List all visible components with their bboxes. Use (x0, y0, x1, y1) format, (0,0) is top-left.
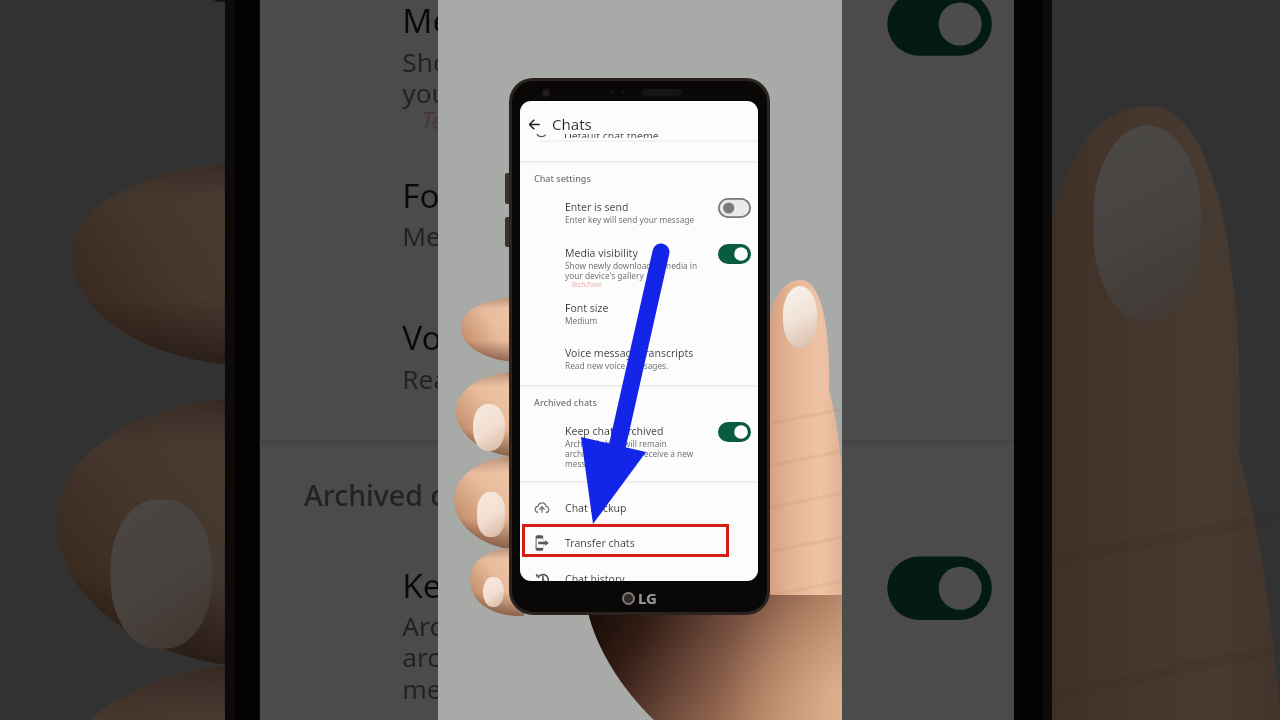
button[interactable]: Chat history (520, 561, 758, 581)
button[interactable]: Font size (520, 295, 758, 329)
button[interactable]: Voice message transcripts (520, 340, 758, 374)
staticText: Show newly downloaded media in your devi… (565, 260, 698, 281)
staticText: Default chat theme (564, 134, 659, 138)
staticText: Media visibility (402, 0, 634, 43)
staticText: TechZone (571, 279, 603, 288)
staticText: Read new voice messages. (565, 360, 669, 371)
button[interactable]: Enter is send (520, 194, 758, 228)
staticText: Archived chats (304, 474, 504, 512)
button[interactable]: Switch off (718, 198, 751, 218)
staticText: Keep chats archived (565, 424, 664, 438)
staticText: Enter is send (565, 200, 629, 214)
staticText: Read new voice messages. (402, 360, 732, 395)
staticText: Chat settings (534, 172, 591, 184)
staticText: Archived chats will remain archived when… (565, 438, 694, 469)
button[interactable]: Keep chats archived (520, 418, 758, 470)
staticText: Show newly downloaded media in your devi… (402, 43, 824, 110)
button[interactable]: Media visibility (520, 240, 758, 284)
button[interactable]: Font size (260, 154, 1014, 262)
button[interactable]: Keep chats archived (260, 544, 1014, 709)
staticText: Archived chats (534, 396, 597, 408)
staticText: Medium (402, 217, 507, 252)
staticText: Voice message transcripts (565, 346, 694, 360)
staticText: Chat backup (565, 501, 627, 515)
staticText: Voice message transcripts (402, 316, 811, 360)
staticText: Font size (402, 173, 542, 217)
button[interactable]: Chat backup (520, 490, 758, 525)
button[interactable]: Switch on (718, 244, 751, 264)
button[interactable]: Back (521, 111, 547, 137)
button[interactable]: Switch on (718, 422, 751, 442)
button[interactable]: Switch on (887, 0, 992, 56)
button[interactable]: Transfer chats (520, 525, 758, 560)
staticText: LG (638, 588, 657, 608)
staticText: Medium (565, 315, 598, 326)
staticText: Media visibility (565, 246, 638, 260)
button[interactable]: Voice message transcripts (260, 297, 1014, 404)
staticText: Enter key will send your message (565, 214, 695, 225)
staticText: Font size (565, 301, 609, 315)
staticText: Archived chats will remain archived when… (402, 607, 811, 706)
staticText: TechZone (421, 103, 523, 132)
staticText: Keep chats archived (402, 563, 716, 607)
staticText: Chats (552, 114, 592, 134)
button[interactable]: Switch on (887, 556, 992, 620)
button[interactable]: Media visibility (260, 0, 1014, 119)
staticText: Transfer chats (565, 536, 635, 550)
staticText: Chat history (565, 572, 625, 581)
